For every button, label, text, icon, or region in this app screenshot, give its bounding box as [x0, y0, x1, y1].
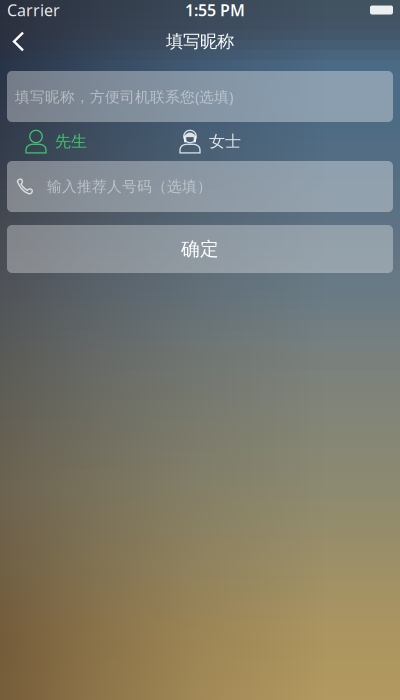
staticText: Carrier: [7, 0, 60, 21]
button[interactable]: 先生: [0, 122, 154, 161]
button[interactable]: 填写昵称，方便司机联系您(选填): [7, 71, 393, 122]
staticText: 输入推荐人号码（选填）: [47, 177, 212, 195]
staticText: 先生: [55, 132, 87, 151]
button[interactable]: 确定: [7, 225, 393, 273]
staticText: 填写昵称: [166, 31, 234, 52]
button[interactable]: 女士: [154, 122, 400, 161]
button[interactable]: Back: [0, 25, 40, 58]
staticText: 填写昵称，方便司机联系您(选填): [15, 87, 233, 106]
button[interactable]: 输入推荐人号码（选填）: [7, 161, 393, 212]
staticText: 女士: [209, 132, 241, 151]
staticText: 1:55 PM: [185, 0, 245, 21]
staticText: 确定: [181, 237, 219, 260]
